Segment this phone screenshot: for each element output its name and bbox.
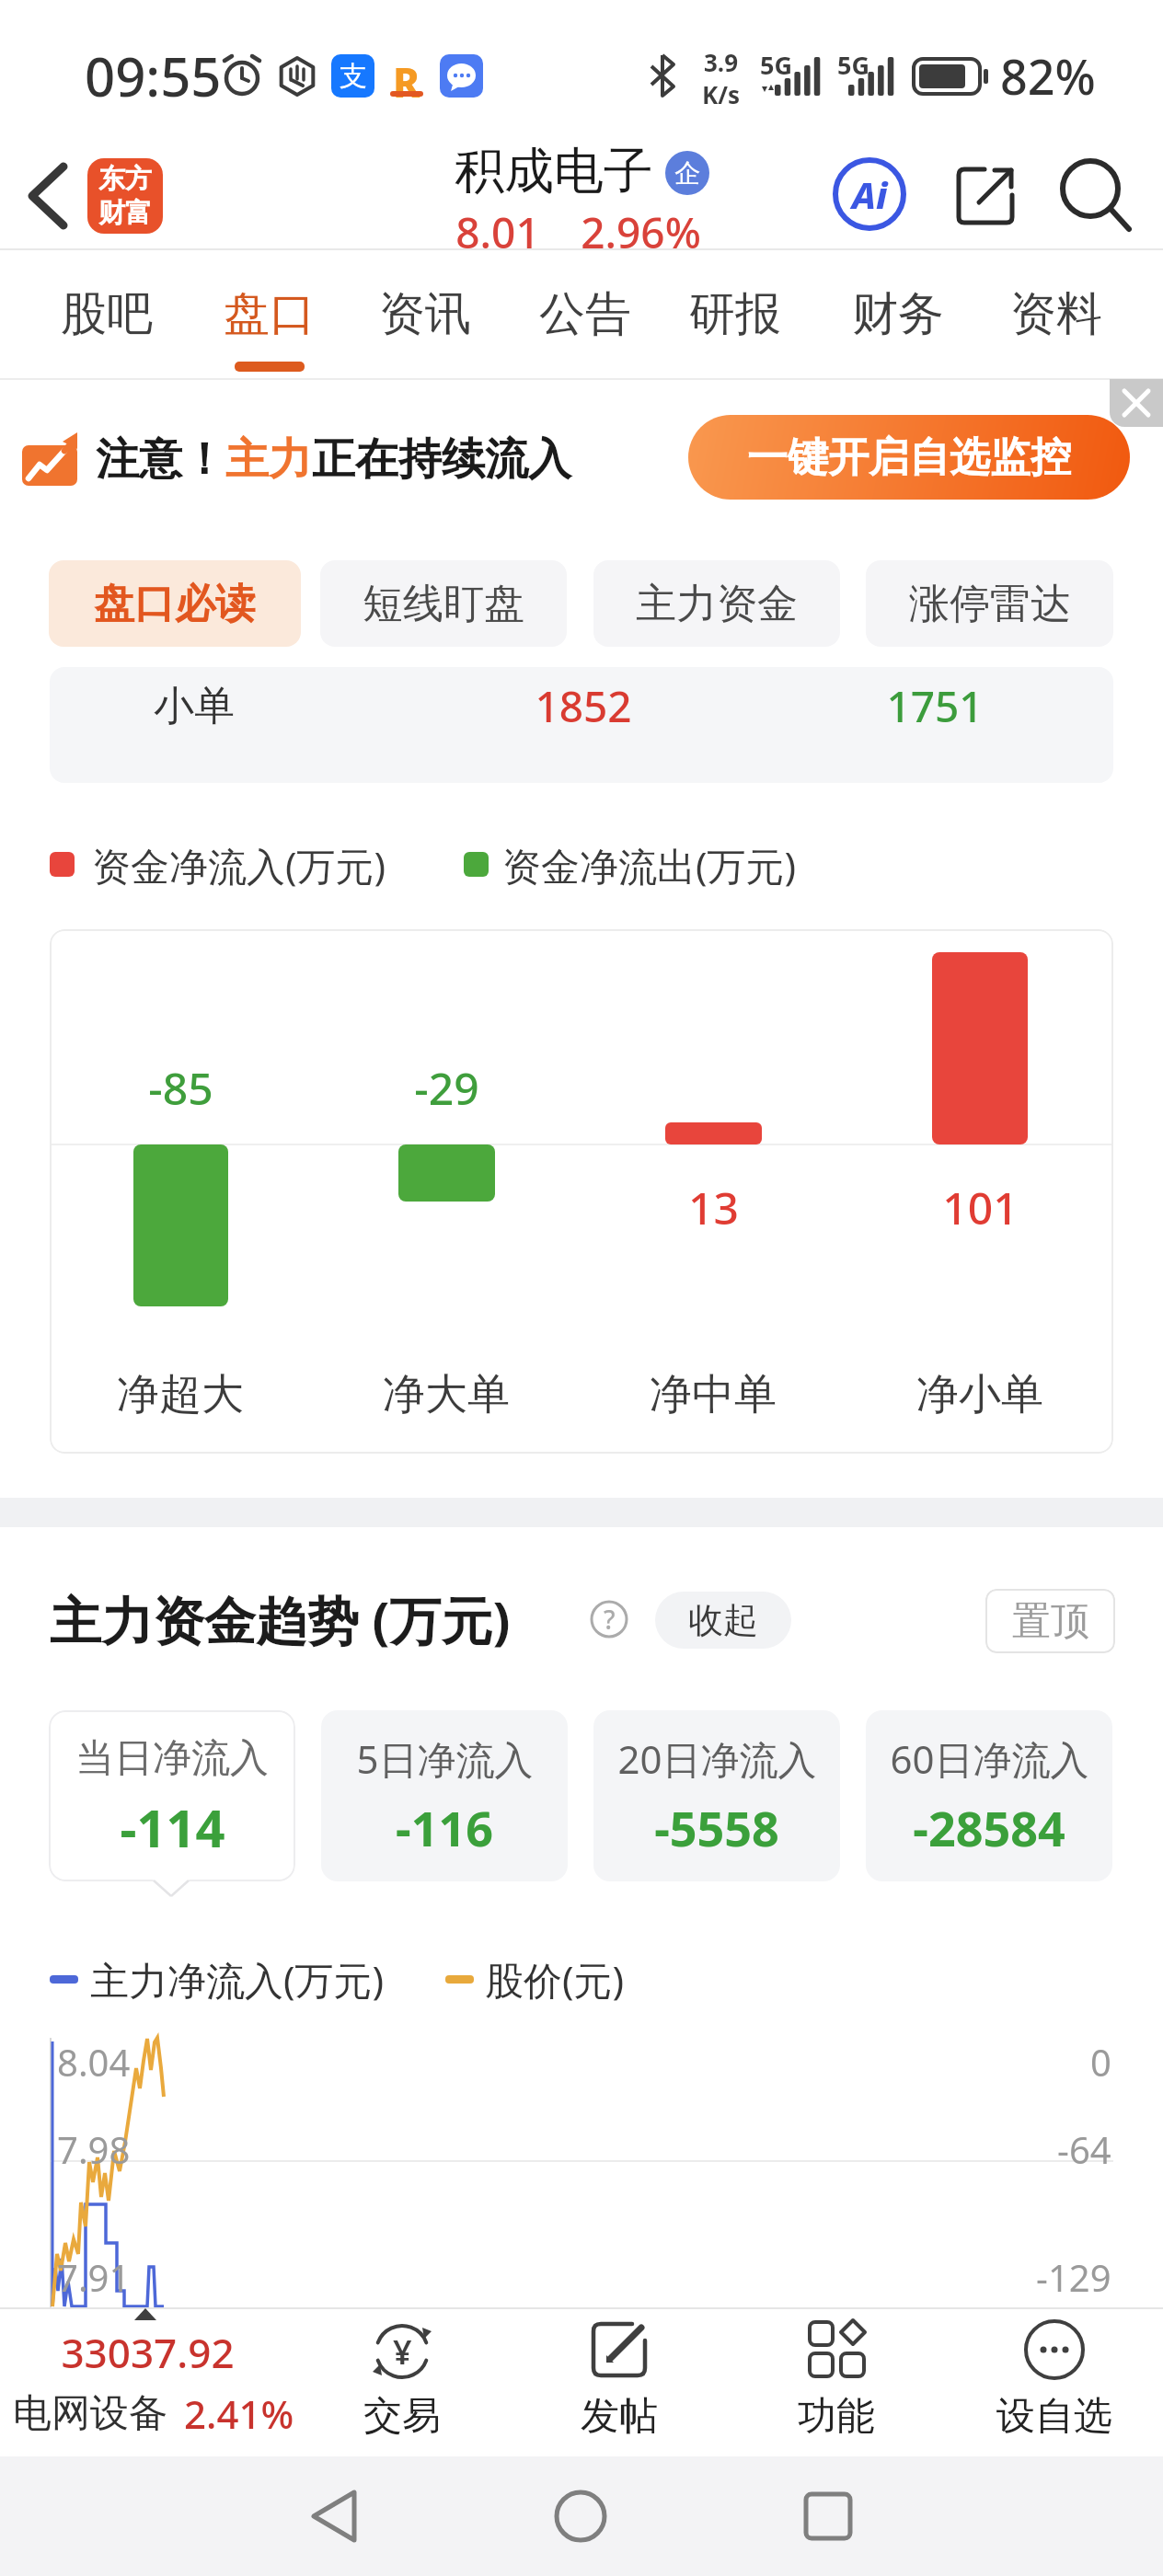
staticText: 8.01 [455,203,540,261]
staticText: 资料 [1010,285,1102,343]
staticText: 股价(元) [485,1953,625,2006]
staticText: 5G [760,48,792,82]
button[interactable]: 资料 [983,262,1130,365]
button[interactable]: 资讯 [351,262,499,365]
staticText: -85 [148,1058,213,1118]
staticText: -114 [120,1792,225,1862]
button[interactable] [49,1710,295,1881]
staticText: 企 [674,157,700,190]
staticText: 积成电子 [455,140,653,202]
staticText: 主力资金 [636,579,798,629]
staticText: 资金净流入(万元) [92,839,386,891]
button[interactable] [285,2466,386,2567]
button[interactable]: 股吧 [33,262,180,365]
button[interactable] [866,1710,1112,1881]
button[interactable]: 盘口必读 [49,560,301,647]
button[interactable]: 一键开启自选监控 [688,415,1130,500]
staticText: 资金净流出(万元) [502,839,797,891]
button[interactable] [593,1710,840,1881]
staticText: 支 [340,59,367,94]
staticText: -64 [1057,2124,1111,2174]
button[interactable] [1110,379,1163,427]
staticText: 交易 [363,2392,441,2441]
staticText: 一键开启自选监控 [747,432,1071,483]
button[interactable] [15,152,79,239]
button[interactable] [555,2313,684,2446]
staticText: 7.91 [57,2252,131,2302]
staticText: R [393,54,420,98]
staticText: 1852 [535,677,632,735]
staticText: 主力 [225,432,312,487]
staticText: 7.98 [57,2124,131,2174]
staticText: 发帖 [581,2392,658,2441]
button[interactable]: 收起 [655,1592,791,1649]
staticText: 2.41% [184,2387,294,2440]
button[interactable] [953,164,1018,228]
staticText: -28584 [913,1795,1065,1860]
staticText: -129 [1036,2252,1111,2302]
button[interactable] [772,2313,901,2446]
button[interactable] [1054,152,1141,239]
staticText: 财富 [98,196,152,230]
staticText: Ai [852,169,888,219]
staticText: 净超大 [117,1368,244,1421]
button[interactable]: 财务 [824,262,972,365]
staticText: ¥ [393,2329,412,2375]
staticText: 净大单 [383,1368,510,1421]
button[interactable]: 研报 [662,262,809,365]
staticText: 8.04 [57,2037,131,2087]
staticText: 当日净流入 [75,1734,269,1783]
staticText: 涨停雷达 [909,579,1071,629]
button[interactable]: 主力资金 [593,560,840,647]
staticText: -116 [396,1795,493,1860]
button[interactable]: Ai [833,157,906,231]
button[interactable]: 短线盯盘 [320,560,567,647]
staticText: 主力净流入(万元) [90,1953,385,2006]
staticText: 33037.92 [61,2325,235,2380]
staticText: 1751 [886,677,984,735]
staticText: ? [604,1602,616,1637]
staticText: 设自选 [996,2392,1112,2441]
button[interactable] [530,2466,631,2567]
button[interactable] [321,1710,568,1881]
staticText: 正在持续流入 [312,432,571,487]
button[interactable]: 置顶 [985,1589,1115,1653]
button[interactable] [338,2313,466,2446]
staticText: 13 [688,1178,739,1237]
staticText: 101 [942,1178,1019,1237]
staticText: 小单 [154,681,235,731]
button[interactable] [0,2307,304,2456]
staticText: -29 [414,1058,479,1118]
staticText: 净中单 [650,1368,777,1421]
staticText: 0 [1090,2037,1111,2087]
staticText: 82% [1000,43,1096,109]
staticText: -5558 [654,1795,779,1860]
staticText: 盘口必读 [94,579,256,629]
staticText: 20日净流入 [617,1732,817,1785]
staticText: 3.9 [704,46,739,78]
staticText: 股吧 [61,285,153,343]
staticText: 电网设备 [13,2389,167,2438]
staticText: 研报 [689,285,781,343]
staticText: 09:55 [85,40,222,112]
button[interactable] [777,2466,879,2567]
staticText: 收起 [688,1598,758,1642]
staticText: 盘口 [224,285,316,343]
staticText: 财务 [852,285,944,343]
staticText: 功能 [798,2392,875,2441]
staticText: 5日净流入 [356,1732,534,1785]
button[interactable]: 东方 [87,158,163,234]
button[interactable]: 涨停雷达 [866,560,1113,647]
button[interactable] [990,2313,1119,2446]
staticText: 60日净流入 [890,1732,1089,1785]
staticText: 2.96% [581,203,701,261]
staticText: K/s [702,78,741,107]
button[interactable]: 公告 [512,262,659,365]
staticText: 公告 [539,285,631,343]
staticText: 5G [837,48,869,82]
staticText: 短线盯盘 [363,579,524,629]
staticText: 置顶 [1012,1597,1089,1646]
button[interactable]: 盘口 [196,262,343,365]
staticText: 净小单 [916,1368,1043,1421]
staticText: 资讯 [379,285,471,343]
